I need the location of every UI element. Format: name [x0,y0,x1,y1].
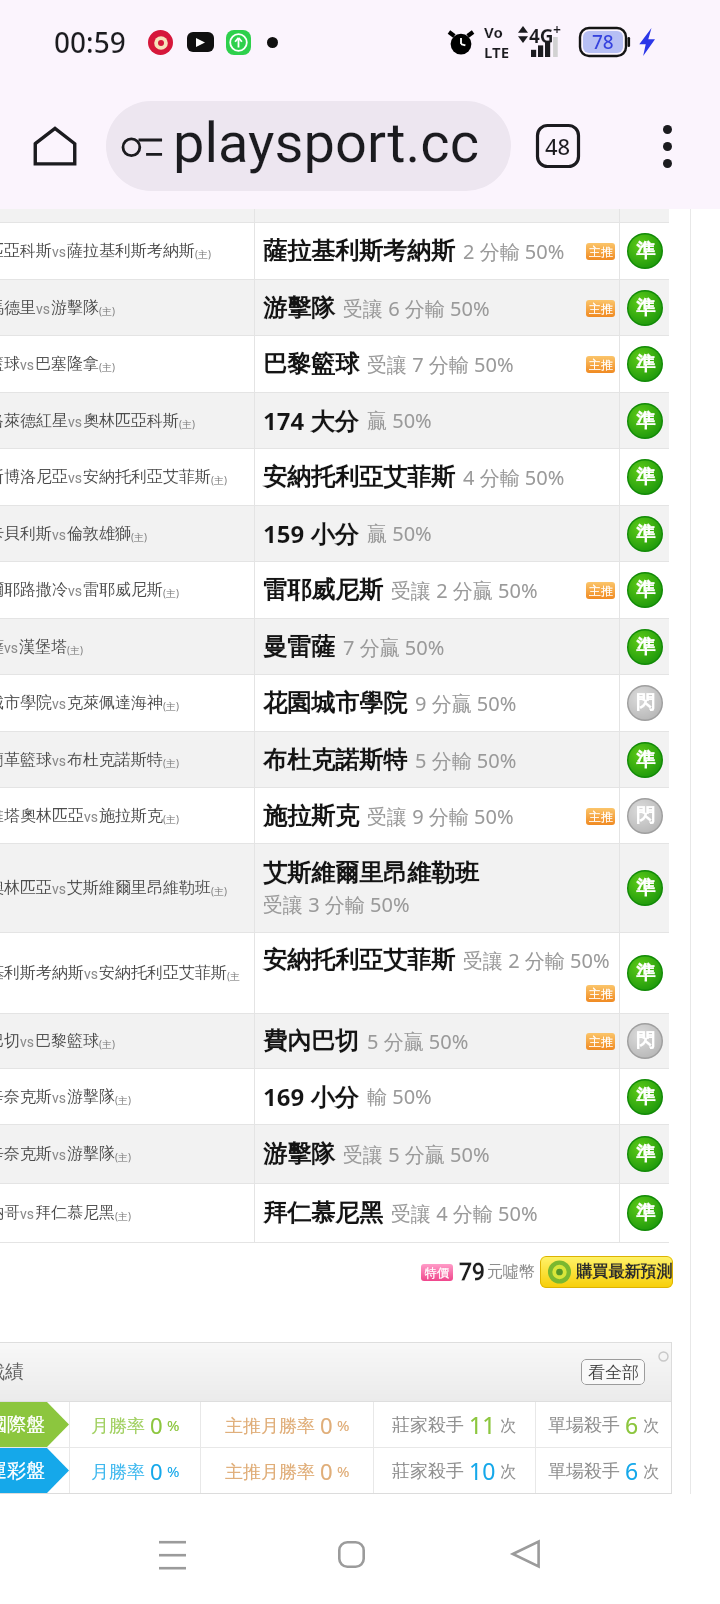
button[interactable]: Recent apps [136,1518,208,1590]
staticText: 準 [636,876,655,900]
button[interactable]: 蘭革籃球 [0,732,669,787]
staticText: 曼雷薩 [263,632,335,662]
staticText: 格萊德紅星 [0,411,68,431]
staticText: 奧林匹亞 [0,878,52,898]
staticText: 準 [636,635,655,659]
staticText: 準 [636,1085,655,1109]
staticText: 巴黎籃球 [263,349,359,379]
button[interactable]: 巴切 [0,1014,669,1068]
staticText: 11 [469,1409,496,1440]
staticText: 主推 [589,986,613,1001]
button[interactable]: 奧林匹亞 [0,844,669,932]
staticText: 7 分贏 50% [343,634,445,661]
staticText: 159 小分 [263,517,359,550]
staticText: 9 分贏 50% [415,690,517,717]
staticText: playsport.cc [173,110,479,176]
staticText: 主推 [589,583,613,598]
staticText: (主) [99,1037,115,1051]
staticText: 月勝率 [91,1459,150,1484]
staticText: 游擊隊 [67,1087,115,1107]
staticText: 受讓 9 分輸 50% [367,803,514,830]
staticText: 籃球 [0,354,20,374]
staticText: 0 [320,1456,333,1486]
staticText: 單場殺手 [548,1412,625,1437]
staticText: 169 小分 [263,1080,359,1113]
staticText: vs [68,583,83,599]
staticText: 游擊隊 [263,293,335,323]
staticText: 巴切 [0,1031,20,1051]
staticText: 匹亞科斯 [0,241,52,261]
staticText: 運彩盤 [0,1459,45,1483]
staticText: 10 [469,1455,496,1486]
button[interactable]: 基利斯考納斯 [0,933,669,1013]
button[interactable]: 爾耶路撒冷 [0,562,669,618]
staticText: (主) [115,1093,131,1107]
button[interactable]: playsport.cc [106,101,511,191]
staticText: 0 [150,1456,163,1486]
staticText: 主推月勝率 [225,1459,320,1484]
button[interactable]: 馬德里 [0,280,669,335]
button[interactable]: 購買最新預測 [540,1256,673,1288]
button[interactable]: 斯博洛尼亞 [0,449,669,505]
staticText: 戰績 [0,1360,24,1384]
staticText: (主) [131,530,147,544]
staticText: 薩拉基利斯考納斯 [67,241,195,261]
staticText: 辛奈克斯 [0,1087,52,1107]
staticText: 48 [545,131,571,161]
staticText: 受讓 4 分輸 50% [391,1200,538,1227]
button[interactable]: 卡貝利斯 [0,506,669,561]
staticText: 準 [636,748,655,772]
staticText: 安納托利亞艾菲斯 [83,467,211,487]
button[interactable]: Tabs [529,117,587,175]
staticText: 雷耶威尼斯 [83,580,163,600]
button[interactable]: 納哥 [0,1184,669,1242]
staticText: 次 [639,1460,660,1482]
button[interactable]: 薩 [0,619,669,674]
staticText: 00:59 [54,23,126,61]
staticText: Vo [484,22,503,42]
staticText: (主) [179,417,195,431]
button[interactable]: More options [637,116,697,176]
staticText: 巴塞隆拿 [35,354,99,374]
staticText: 拜仁慕尼黑 [263,1198,383,1228]
staticText: LTE [484,42,510,62]
button[interactable]: Home [315,1518,387,1590]
staticText: % [333,1415,350,1435]
staticText: 準 [636,296,655,320]
staticText: 閃 [636,1029,655,1053]
staticText: 漢堡塔 [19,637,67,657]
staticText: 準 [636,409,655,433]
staticText: vs [52,527,67,543]
button[interactable]: 城市學院 [0,675,669,731]
staticText: vs [52,753,67,769]
button[interactable]: 格萊德紅星 [0,393,669,448]
button[interactable]: 看全部 [581,1359,645,1385]
staticText: 受讓 7 分輸 50% [367,351,514,378]
staticText: vs [52,244,67,260]
staticText: 5 分輸 50% [415,747,517,774]
button[interactable]: 匹亞科斯 [0,223,669,279]
staticText: (主) [115,1150,131,1164]
staticText: 主推 [589,809,613,824]
staticText: vs [52,1090,67,1106]
staticText: 奧林匹亞科斯 [83,411,179,431]
button[interactable]: 籃球 [0,336,669,392]
staticText: vs [4,640,19,656]
staticText: vs [20,1034,35,1050]
staticText: 受讓 6 分輸 50% [343,295,490,322]
staticText: 174 大分 [263,404,359,437]
staticText: (主) [115,1209,131,1223]
staticText: 4G [529,23,554,49]
staticText: (主) [163,586,179,600]
button[interactable]: Back [490,1518,562,1590]
button[interactable]: 辛奈克斯 [0,1125,669,1183]
staticText: 受讓 2 分輸 50% [463,947,610,974]
button[interactable]: Home [23,114,87,178]
staticText: vs [52,696,67,712]
staticText: vs [68,414,83,430]
button[interactable]: 辛奈克斯 [0,1069,669,1124]
staticText: 拜仁慕尼黑 [35,1203,115,1223]
staticText: 薩 [0,637,4,657]
button[interactable]: 維塔奧林匹亞 [0,788,669,843]
staticText: 贏 50% [367,407,432,434]
